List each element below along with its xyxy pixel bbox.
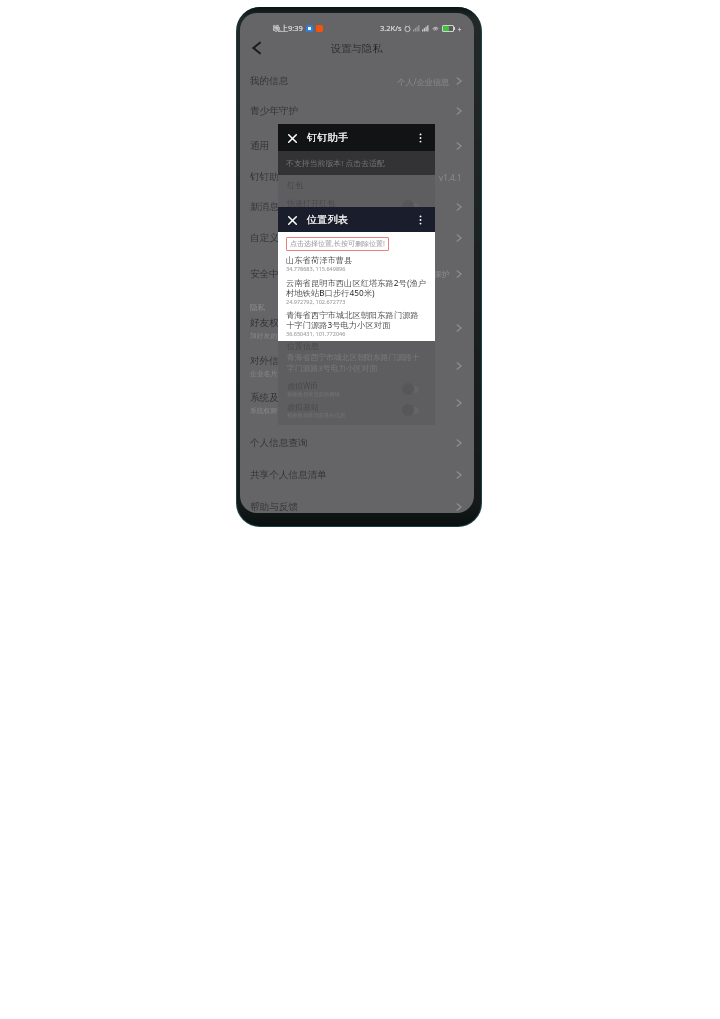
button[interactable]: 青少年守护	[240, 96, 474, 126]
button[interactable]: 共享个人信息清单	[240, 460, 474, 490]
staticText: 24.972792, 102.672773	[286, 298, 346, 305]
staticText: 安全中心	[250, 268, 289, 280]
button[interactable]: 我的信息	[240, 66, 474, 96]
button[interactable]: 虚拟基站	[278, 400, 435, 420]
staticText: 36.650431, 101.772046	[286, 330, 346, 337]
staticText: 位置信息	[287, 341, 319, 351]
staticText: 位置列表	[307, 213, 348, 226]
button[interactable]: 云南省昆明市西山区红塔东路2号(渔户村地铁站B口步行450米)	[286, 277, 427, 305]
button[interactable]: 青海省西宁市城北区朝阳东路门源路十字门源路3号电力小区对面	[286, 310, 427, 337]
staticText: 好友权限	[250, 317, 289, 329]
staticText: 有效地伪装当前基站信息	[287, 412, 346, 419]
button[interactable]: 帮助与反馈	[240, 492, 474, 513]
staticText: 青海省西宁市城北区朝阳东路门源路十字门源路3号电力小区对面	[286, 310, 427, 330]
staticText: v1.4.1	[439, 172, 462, 183]
button[interactable]: 系统及应用权限	[240, 386, 474, 420]
staticText: 自定义快捷操作	[250, 232, 318, 244]
button[interactable]: 虚拟Wifi	[278, 379, 435, 399]
button[interactable]: Close	[285, 213, 299, 227]
button[interactable]: 好友权限	[240, 311, 474, 345]
staticText: 云南省昆明市西山区红塔东路2号(渔户村地铁站B口步行450米)	[286, 277, 427, 298]
staticText: 山东省荷泽市曹县	[286, 255, 353, 265]
staticText: 个人/企业信息	[397, 76, 450, 87]
staticText: 钉钉助手	[250, 171, 289, 183]
staticText: 帮助与反馈	[250, 501, 298, 513]
staticText: 红包	[287, 180, 303, 190]
staticText: 青海省西宁市城北区朝阳东路门源路十字门源路3号电力小区对面	[287, 352, 423, 373]
staticText: 青少年守护	[250, 105, 298, 117]
button[interactable]: 安全中心	[240, 259, 474, 289]
button[interactable]: 快速打开红包	[278, 196, 435, 216]
staticText: 个人信息查询	[250, 437, 308, 449]
staticText: 点击选择位置,长按可删除位置!	[290, 239, 385, 249]
staticText: 我的信息	[250, 75, 289, 87]
staticText: 系统及应用权限	[250, 392, 318, 404]
staticText: 虚拟Wifi	[287, 380, 318, 391]
button[interactable]: 自定义快捷操作	[240, 223, 474, 253]
staticText: 快速打开红包	[287, 198, 335, 208]
staticText: 开启后自动打开红包	[287, 208, 335, 215]
button[interactable]: 不支持当前版本! 点击去适配	[278, 151, 435, 175]
staticText: 账号保护	[417, 269, 450, 279]
button[interactable]: 新消息通知	[240, 192, 474, 222]
staticText: 虚拟基站	[287, 402, 319, 412]
staticText: 企业名片等	[250, 369, 284, 378]
staticText: 3.2K/s	[380, 23, 402, 33]
staticText: 晚上9:39	[273, 23, 303, 33]
staticText: 34.778683, 115.649896	[286, 265, 346, 272]
staticText: 钉钉助手	[307, 131, 348, 144]
button[interactable]: 对外信息展示	[240, 349, 474, 383]
button[interactable]: 山东省荷泽市曹县	[286, 255, 427, 272]
button[interactable]: Close	[285, 131, 299, 145]
staticText: 加好友的方式	[250, 331, 291, 340]
staticText: 通用	[250, 140, 270, 152]
button[interactable]: 通用	[240, 131, 474, 161]
staticText: 新消息通知	[250, 201, 298, 213]
staticText: 共享个人信息清单	[250, 469, 327, 481]
button[interactable]: 个人信息查询	[240, 428, 474, 458]
staticText: 对外信息展示	[250, 355, 308, 367]
button[interactable]: 钉钉助手	[240, 162, 474, 192]
staticText: 系统权限管理	[250, 406, 291, 415]
staticText: 隐私	[250, 303, 265, 312]
staticText: 不支持当前版本! 点击去适配	[286, 158, 385, 169]
staticText: 有效地伪装当前的网络	[287, 391, 340, 398]
staticText: 设置与隐私	[331, 42, 383, 55]
button[interactable]: More options	[415, 132, 426, 143]
button[interactable]: More options	[415, 214, 426, 225]
button[interactable]: Back	[245, 37, 267, 59]
